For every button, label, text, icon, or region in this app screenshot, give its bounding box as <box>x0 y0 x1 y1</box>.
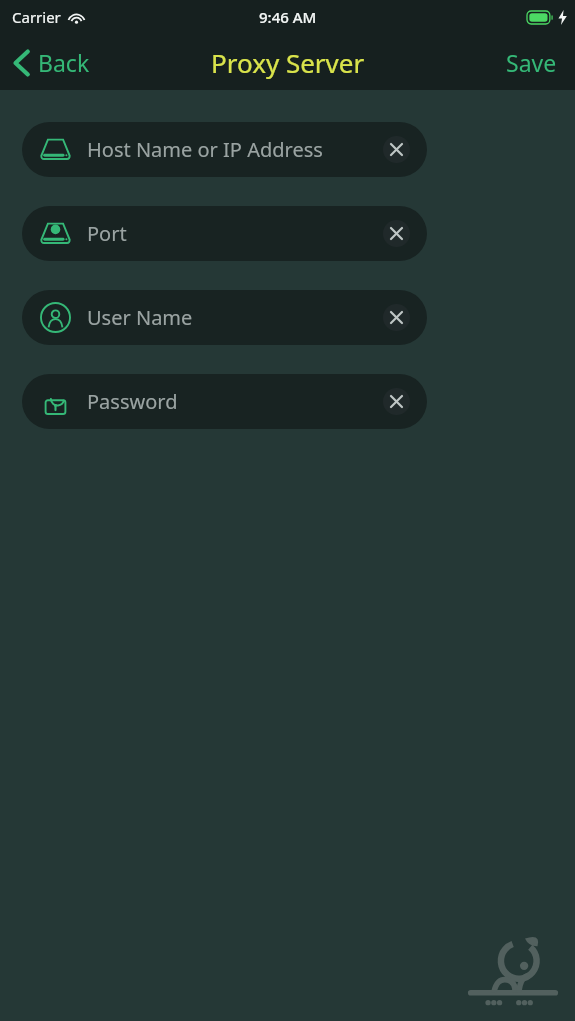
button[interactable]: Host Name or IP Address <box>22 122 427 177</box>
staticText: Password <box>87 388 383 415</box>
button[interactable]: Clear Port <box>383 220 410 247</box>
button[interactable]: Password <box>22 374 427 429</box>
staticText: Host Name or IP Address <box>87 136 383 163</box>
staticText: 9:46 AM <box>259 7 317 27</box>
staticText: Port <box>87 220 383 247</box>
button[interactable]: Save <box>488 39 575 86</box>
staticText: Proxy Server <box>211 45 365 80</box>
staticText: Save <box>506 47 557 78</box>
staticText: Carrier <box>12 7 61 27</box>
button[interactable]: Back <box>0 41 100 84</box>
button[interactable]: Port <box>22 206 427 261</box>
staticText: Back <box>38 47 90 78</box>
staticText: User Name <box>87 304 383 331</box>
button[interactable]: Clear Host Name or IP Address <box>383 136 410 163</box>
button[interactable]: Clear User Name <box>383 304 410 331</box>
button[interactable]: User Name <box>22 290 427 345</box>
button[interactable]: Clear Password <box>383 388 410 415</box>
